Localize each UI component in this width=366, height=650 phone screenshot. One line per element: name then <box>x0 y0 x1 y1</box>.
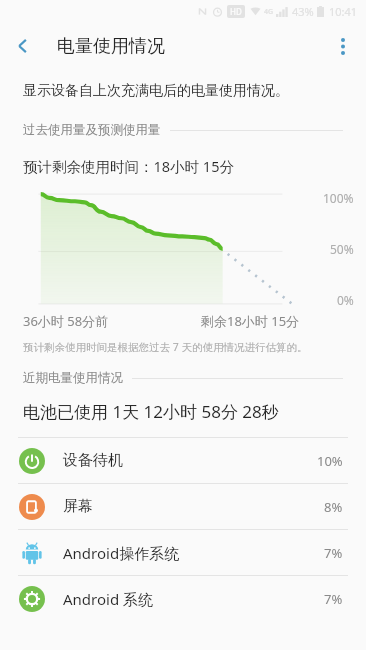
staticText: 8% <box>324 498 343 516</box>
button[interactable]: Android操作系统 <box>0 530 366 575</box>
staticText: Android 系统 <box>63 589 154 609</box>
staticText: 剩余18小时 15分 <box>201 312 300 330</box>
staticText: 7% <box>324 544 343 562</box>
button[interactable]: Back <box>0 23 46 69</box>
staticText: 10:41 <box>329 4 358 19</box>
button[interactable]: 设备待机 <box>0 438 366 483</box>
staticText: 4G <box>264 7 274 17</box>
staticText: 7% <box>324 590 343 608</box>
staticText: 设备待机 <box>63 451 123 470</box>
staticText: 43% <box>292 4 314 19</box>
staticText: 显示设备自上次充满电后的电量使用情况。 <box>23 82 289 100</box>
staticText: 10% <box>317 452 343 470</box>
staticText: 电量使用情况 <box>57 35 165 58</box>
staticText: 36小时 58分前 <box>23 312 109 330</box>
button[interactable]: More options <box>320 23 366 69</box>
button[interactable]: Android 系统 <box>0 576 366 621</box>
staticText: 近期电量使用情况 <box>23 370 123 386</box>
staticText: 预计剩余使用时间：18小时 15分 <box>23 156 234 176</box>
staticText: 0% <box>337 292 354 308</box>
staticText: 屏幕 <box>63 497 93 516</box>
staticText: 50% <box>330 241 354 257</box>
staticText: HD <box>230 6 242 17</box>
staticText: 过去使用量及预测使用量 <box>23 122 161 138</box>
staticText: 预计剩余使用时间是根据您过去 7 天的使用情况进行估算的。 <box>23 340 308 354</box>
staticText: 电池已使用 1天 12小时 58分 28秒 <box>23 400 279 423</box>
button[interactable]: 屏幕 <box>0 484 366 529</box>
staticText: 100% <box>323 190 354 206</box>
staticText: Android操作系统 <box>63 543 180 563</box>
